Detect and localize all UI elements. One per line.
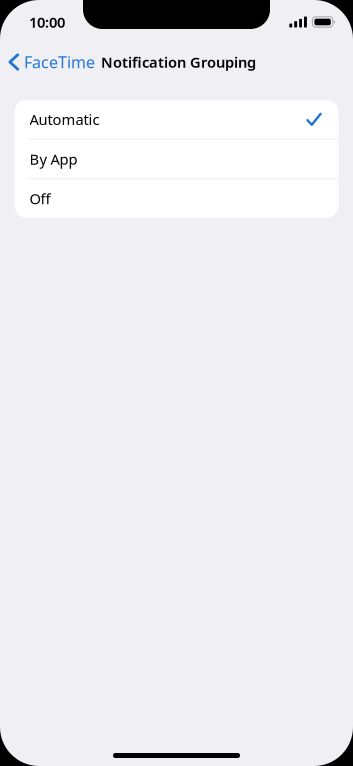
button[interactable]: FaceTime (8, 43, 101, 81)
staticText: Off (30, 189, 51, 208)
button[interactable]: By App (15, 140, 338, 178)
staticText: Notification Grouping (101, 52, 256, 72)
staticText: 10:00 (29, 12, 65, 32)
staticText: Automatic (30, 110, 100, 129)
button[interactable]: Automatic (15, 100, 338, 139)
staticText: By App (30, 149, 78, 169)
button[interactable]: Off (15, 179, 338, 218)
staticText: FaceTime (24, 51, 95, 73)
